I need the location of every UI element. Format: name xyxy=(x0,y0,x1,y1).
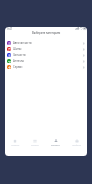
staticText: Главная xyxy=(11,144,20,147)
button[interactable]: Сервис xyxy=(5,64,87,70)
staticText: Каталог xyxy=(31,144,39,147)
staticText: Сервис xyxy=(13,65,23,69)
button[interactable]: Аптечка xyxy=(5,58,87,64)
staticText: Выберите категорию xyxy=(32,31,61,35)
staticText: Шины xyxy=(13,47,22,51)
button[interactable]: Корзина xyxy=(45,139,66,156)
staticText: 9:41 xyxy=(7,27,13,30)
button[interactable]: Главная xyxy=(5,139,25,156)
staticText: Аптечка xyxy=(13,59,24,63)
button[interactable]: Шины xyxy=(5,46,87,52)
staticText: Профиль xyxy=(72,144,82,147)
button[interactable]: Автозапчасти xyxy=(5,40,87,46)
button[interactable]: Каталог xyxy=(25,139,45,156)
staticText: Корзина xyxy=(51,144,60,147)
staticText: Автозапчасти xyxy=(13,41,32,45)
button[interactable]: Профиль xyxy=(66,139,87,156)
button[interactable]: Запчасти xyxy=(5,52,87,58)
staticText: Запчасти xyxy=(13,53,26,57)
